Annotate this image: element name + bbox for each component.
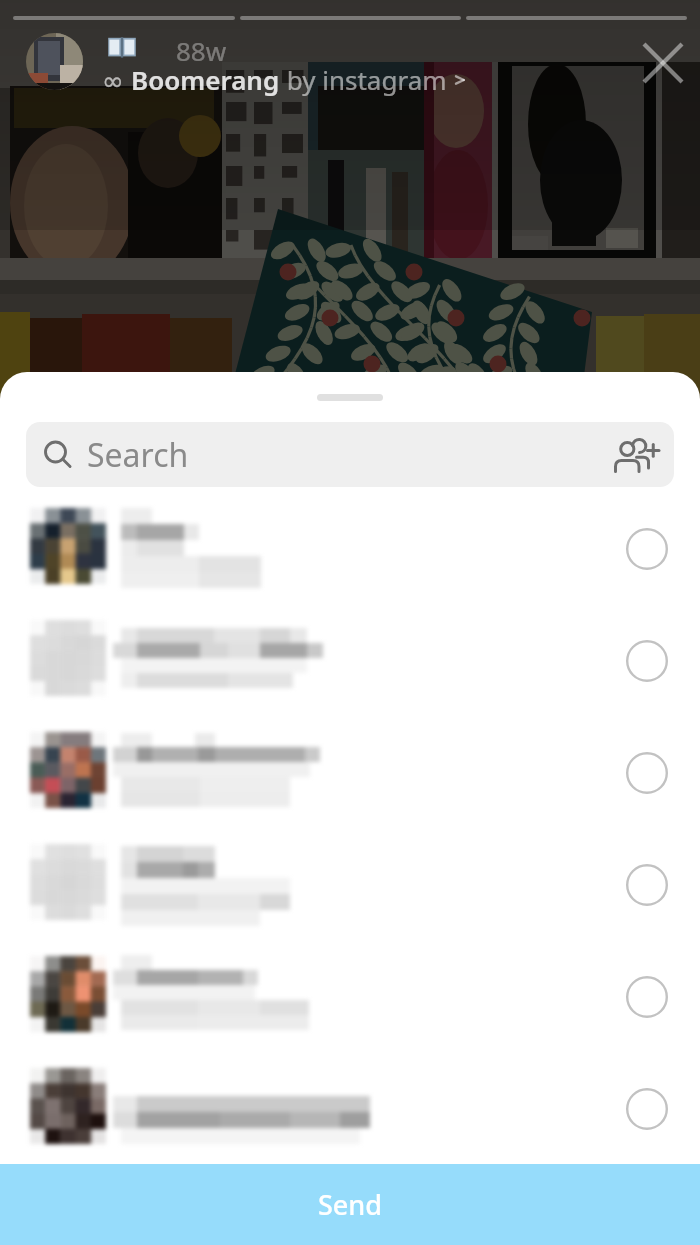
button[interactable]: Close bbox=[628, 28, 698, 98]
button[interactable]: Search bbox=[26, 422, 674, 487]
staticText: Boomerang bbox=[131, 62, 280, 97]
staticText: 88w bbox=[176, 33, 227, 68]
button[interactable] bbox=[0, 1053, 700, 1165]
staticText: ∞ bbox=[102, 62, 131, 97]
staticText: Search bbox=[87, 433, 189, 477]
button[interactable] bbox=[0, 605, 700, 717]
button[interactable]: Send bbox=[0, 1164, 700, 1245]
button[interactable] bbox=[0, 493, 700, 605]
button[interactable] bbox=[0, 829, 700, 941]
button[interactable] bbox=[0, 717, 700, 829]
button[interactable] bbox=[0, 941, 700, 1053]
button[interactable]: Add people bbox=[610, 428, 664, 482]
staticText: by instagram bbox=[280, 62, 454, 97]
staticText: Send bbox=[318, 1186, 383, 1223]
